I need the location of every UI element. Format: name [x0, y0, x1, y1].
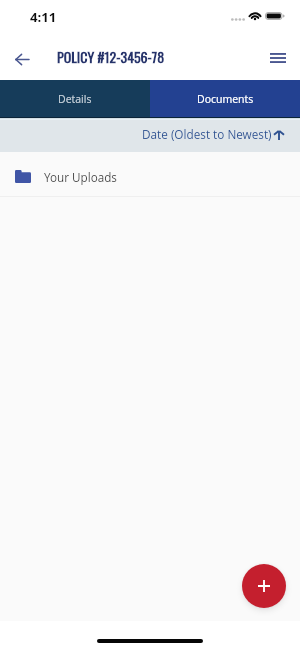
- button[interactable]: Documents: [150, 80, 300, 117]
- staticText: Details: [58, 92, 92, 106]
- staticText: Documents: [197, 92, 254, 106]
- button[interactable]: Details: [0, 80, 150, 117]
- staticText: 4:11: [30, 8, 57, 26]
- button[interactable]: Add: [242, 564, 286, 608]
- button[interactable]: Menu: [263, 44, 292, 72]
- button[interactable]: Your Uploads: [0, 152, 300, 197]
- staticText: Date (Oldest to Newest): [142, 126, 272, 142]
- button[interactable]: Back: [7, 45, 37, 73]
- staticText: POLICY #12-3456-78: [57, 46, 165, 67]
- button[interactable]: Date (Oldest to Newest): [142, 128, 284, 144]
- staticText: Your Uploads: [44, 169, 117, 185]
